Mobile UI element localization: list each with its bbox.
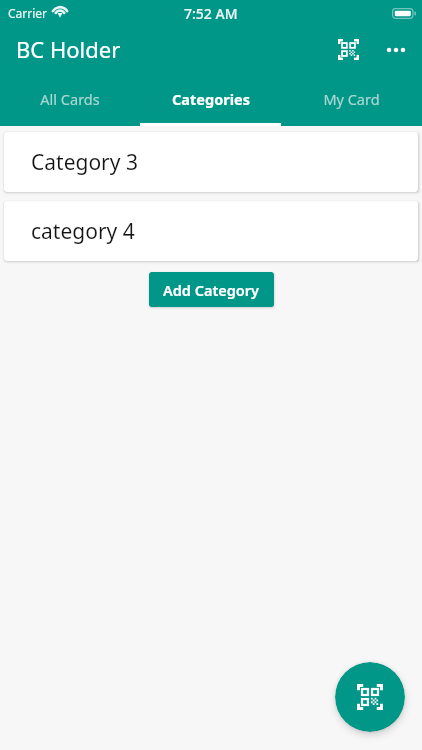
staticText: Categories (172, 89, 250, 109)
staticText: My Card (323, 89, 380, 109)
button[interactable]: Categories (140, 75, 281, 126)
button[interactable]: category 4 (4, 201, 418, 261)
button[interactable]: Scan QR code (335, 662, 405, 732)
staticText: Category 3 (31, 148, 138, 177)
button[interactable]: Scan QR code (324, 27, 372, 75)
staticText: All Cards (40, 89, 100, 109)
button[interactable]: More options (372, 27, 420, 75)
staticText: Carrier (8, 5, 48, 21)
button[interactable]: All Cards (0, 75, 140, 126)
staticText: category 4 (31, 217, 135, 246)
staticText: 7:52 AM (184, 4, 238, 23)
button[interactable]: Add Category (149, 272, 274, 307)
button[interactable]: My Card (281, 75, 422, 126)
staticText: Add Category (163, 280, 260, 300)
staticText: BC Holder (16, 34, 121, 64)
button[interactable]: Category 3 (4, 132, 418, 192)
